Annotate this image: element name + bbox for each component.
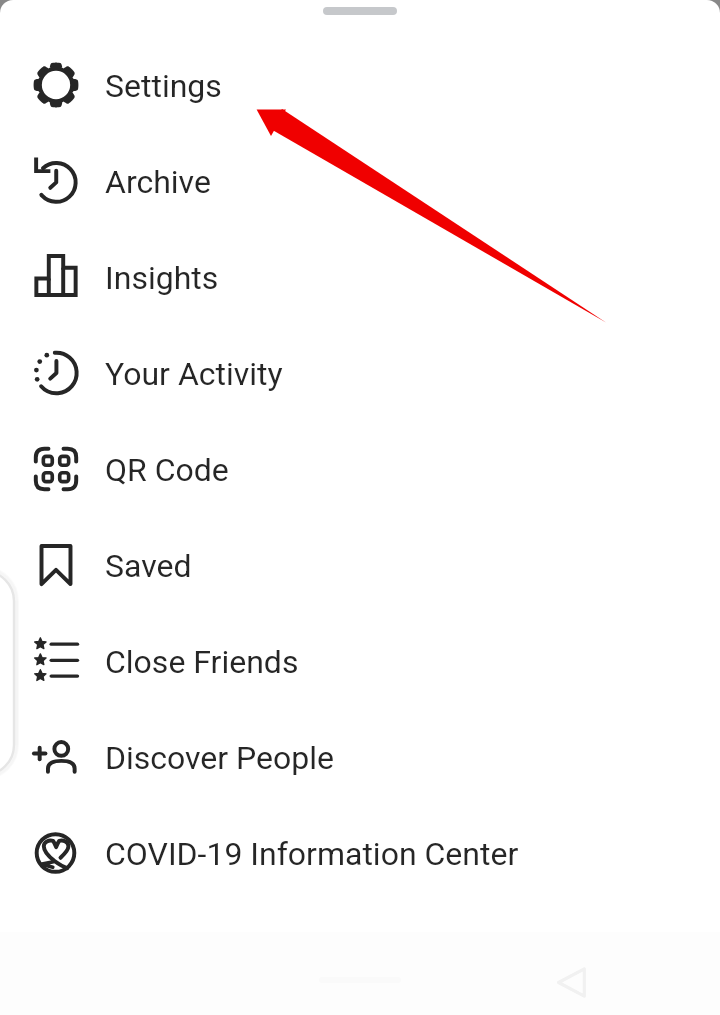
- button[interactable]: Back: [557, 967, 588, 998]
- staticText: Discover People: [105, 739, 335, 777]
- button[interactable]: Discover People: [0, 710, 720, 806]
- button[interactable]: Insights: [0, 230, 720, 326]
- staticText: Settings: [105, 67, 222, 105]
- staticText: Close Friends: [105, 643, 299, 681]
- staticText: COVID-19 Information Center: [105, 835, 519, 873]
- staticText: Your Activity: [105, 355, 283, 393]
- staticText: QR Code: [105, 451, 229, 489]
- staticText: Insights: [105, 259, 219, 297]
- button[interactable]: Archive: [0, 134, 720, 230]
- button[interactable]: Close Friends: [0, 614, 720, 710]
- button[interactable]: Your Activity: [0, 326, 720, 422]
- button[interactable]: Settings: [0, 38, 720, 134]
- button[interactable]: QR Code: [0, 422, 720, 518]
- staticText: Archive: [105, 163, 211, 201]
- button[interactable]: Saved: [0, 518, 720, 614]
- button[interactable]: COVID-19 Information Center: [0, 806, 720, 902]
- staticText: Saved: [105, 547, 192, 585]
